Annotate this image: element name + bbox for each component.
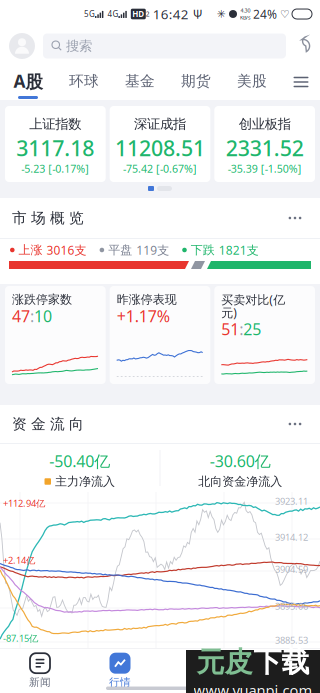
staticText: 3895.06 <box>275 600 308 612</box>
button[interactable]: 基金 <box>112 64 168 100</box>
staticText: 11208.51 <box>115 134 205 162</box>
staticText: 4.30 <box>240 7 250 14</box>
staticText: 51 <box>221 318 239 340</box>
button[interactable]: 上证指数 <box>5 106 106 182</box>
button[interactable]: 昨涨停表现 <box>110 286 210 384</box>
button[interactable]: 美股 <box>224 64 280 100</box>
button[interactable]: More tabs <box>286 64 316 100</box>
staticText: 3923.11 <box>275 495 308 507</box>
staticText: 下跌 <box>187 243 219 257</box>
staticText: 119支 <box>136 242 169 258</box>
button[interactable]: Profile <box>9 33 35 59</box>
button[interactable]: 深证成指 <box>110 106 210 182</box>
staticText: ♡ <box>280 8 290 20</box>
staticText: +2.14亿 <box>3 554 35 566</box>
staticText: 期货 <box>181 72 211 90</box>
staticText: 3914.12 <box>275 531 308 543</box>
staticText: Ψ <box>193 6 203 22</box>
staticText: 涨跌停家数 <box>12 292 72 307</box>
staticText: HD <box>132 9 144 19</box>
button[interactable]: 行情 <box>80 649 160 686</box>
button[interactable]: 自选 <box>160 649 240 686</box>
staticText: KB/s <box>240 14 251 21</box>
staticText: : <box>239 318 243 340</box>
staticText: 3016支 <box>47 242 87 258</box>
button[interactable]: Dark mode <box>295 38 311 54</box>
staticText: 3885.53 <box>275 634 308 646</box>
staticText: 4G <box>107 9 118 19</box>
staticText: 北向资金净流入 <box>198 474 282 489</box>
staticText: 平盘 <box>104 243 136 257</box>
button[interactable]: 新闻 <box>0 649 80 686</box>
staticText: 市 场 概 览 <box>12 209 84 227</box>
button[interactable]: 交易 <box>240 649 320 686</box>
staticText: 下载 <box>253 645 309 679</box>
staticText: 主力净流入 <box>55 474 115 489</box>
staticText: -75.42 [-0.67%] <box>123 161 197 176</box>
staticText: 基金 <box>125 72 155 90</box>
button[interactable]: 创业板指 <box>214 106 315 182</box>
button[interactable]: More <box>282 208 308 228</box>
staticText: +112.94亿 <box>3 497 45 509</box>
staticText: 自选 <box>189 676 211 689</box>
staticText: 环球 <box>69 72 99 90</box>
staticText: 美股 <box>237 72 267 90</box>
staticText: 创业板指 <box>239 116 291 132</box>
button[interactable]: 买卖对比(亿 <box>214 286 315 384</box>
staticText: 上证指数 <box>29 116 81 132</box>
button[interactable]: 涨跌停家数 <box>5 286 106 384</box>
staticText: 行情 <box>109 676 131 689</box>
staticText: 16:42 <box>153 5 189 23</box>
staticText: 3117.18 <box>16 134 94 162</box>
button[interactable]: 搜索 <box>43 33 286 58</box>
staticText: 25 <box>243 318 261 340</box>
staticText: : <box>30 305 34 327</box>
staticText: 昨涨停表现 <box>117 292 177 307</box>
button[interactable]: 环球 <box>56 64 112 100</box>
staticText: 3904.59 <box>275 563 308 575</box>
staticText: 10 <box>34 305 52 327</box>
staticText: -87.15亿 <box>3 632 38 644</box>
staticText: -50.40亿 <box>49 450 110 472</box>
staticText: -35.39 [-1.50%] <box>228 161 302 176</box>
staticText: 买卖对比(亿 <box>221 291 285 307</box>
staticText: 元) <box>221 304 237 320</box>
staticText: www.yuanpi.com <box>193 680 312 693</box>
staticText: 上涨 <box>15 243 47 257</box>
staticText: +1.17% <box>117 305 170 327</box>
staticText: 新闻 <box>29 676 51 689</box>
staticText: 元皮 <box>196 645 252 679</box>
staticText: 1821支 <box>219 242 259 258</box>
staticText: -30.60亿 <box>210 450 271 472</box>
staticText: 47 <box>12 305 30 327</box>
button[interactable]: More <box>282 414 308 434</box>
staticText: 5G <box>84 9 95 19</box>
staticText: 2 <box>146 10 150 18</box>
button[interactable]: 期货 <box>168 64 224 100</box>
staticText: 资 金 流 向 <box>12 415 84 433</box>
staticText: -5.23 [-0.17%] <box>21 161 89 176</box>
staticText: ✳ <box>217 8 226 20</box>
staticText: 交易 <box>269 676 291 689</box>
staticText: 搜索 <box>66 38 92 54</box>
staticText: 24% <box>253 6 277 22</box>
staticText: A股 <box>13 69 42 92</box>
button[interactable]: A股 <box>0 64 56 100</box>
staticText: 深证成指 <box>134 116 186 132</box>
staticText: 2331.52 <box>226 134 304 162</box>
